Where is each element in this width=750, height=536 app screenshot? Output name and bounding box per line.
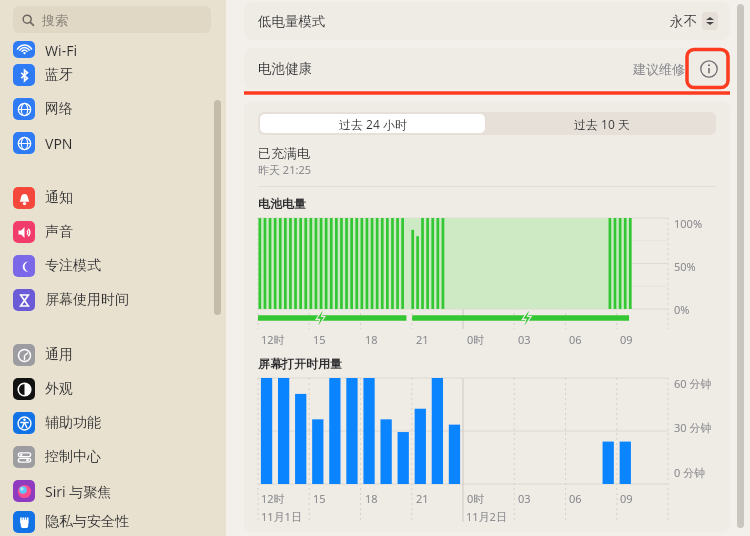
staticText: 外观 (45, 380, 73, 398)
staticText: 12时 (261, 332, 285, 347)
staticText: 隐私与安全性 (45, 513, 129, 531)
button[interactable]: 蓝牙 (13, 58, 213, 92)
button[interactable]: VPN (13, 126, 213, 160)
staticText: 辅助功能 (45, 414, 101, 432)
button[interactable]: 网络 (13, 92, 213, 126)
staticText: 11月2日 (466, 509, 507, 524)
staticText: 12时 (261, 491, 285, 506)
staticText: 21 (416, 332, 429, 347)
staticText: 06 (569, 332, 582, 347)
staticText: Siri 与聚焦 (45, 482, 112, 501)
button[interactable]: 过去 24 小时 (260, 114, 485, 133)
button[interactable]: 控制中心 (13, 440, 213, 474)
button[interactable]: 过去 10 天 (487, 112, 716, 135)
staticText: 建议维修 (633, 61, 685, 77)
staticText: VPN (45, 134, 73, 153)
staticText: 0时 (467, 491, 485, 506)
staticText: 过去 24 小时 (339, 116, 407, 132)
staticText: 03 (518, 491, 531, 506)
button[interactable]: 外观 (13, 372, 213, 406)
staticText: 蓝牙 (45, 66, 73, 84)
staticText: 06 (569, 491, 582, 506)
staticText: 11月1日 (261, 509, 302, 524)
staticText: 30 分钟 (674, 420, 712, 435)
staticText: 声音 (45, 223, 73, 241)
button[interactable]: 通知 (13, 181, 213, 215)
staticText: Wi-Fi (45, 41, 78, 58)
staticText: 0% (674, 302, 690, 317)
button[interactable]: 声音 (13, 215, 213, 249)
button[interactable]: 搜索 (13, 6, 211, 33)
button[interactable]: 辅助功能 (13, 406, 213, 440)
staticText: 专注模式 (45, 257, 101, 275)
staticText: 18 (365, 332, 378, 347)
staticText: 15 (313, 491, 326, 506)
staticText: 60 分钟 (674, 376, 712, 391)
staticText: 已充满电 (258, 145, 310, 161)
staticText: 03 (518, 332, 531, 347)
staticText: 15 (313, 332, 326, 347)
staticText: 18 (365, 491, 378, 506)
staticText: 控制中心 (45, 448, 101, 466)
staticText: 21 (416, 491, 429, 506)
staticText: 通用 (45, 346, 73, 364)
button[interactable]: 屏幕使用时间 (13, 283, 213, 317)
button[interactable]: 电池健康 (244, 48, 730, 89)
staticText: 50% (674, 259, 696, 274)
staticText: 网络 (45, 100, 73, 118)
staticText: 电池健康 (258, 60, 312, 77)
staticText: 0时 (467, 332, 485, 347)
button[interactable]: 电池健康更多信息 (698, 58, 720, 80)
button[interactable]: 通用 (13, 338, 213, 372)
staticText: 低电量模式 (258, 13, 326, 30)
staticText: 通知 (45, 189, 73, 207)
staticText: 永不 (670, 13, 697, 30)
button[interactable]: 专注模式 (13, 249, 213, 283)
button[interactable]: Siri 与聚焦 (13, 474, 213, 508)
staticText: 09 (620, 491, 633, 506)
staticText: 100% (674, 216, 703, 231)
staticText: 搜索 (42, 12, 68, 28)
staticText: 昨天 21:25 (258, 162, 311, 177)
staticText: 屏幕使用时间 (45, 291, 129, 309)
staticText: 屏幕打开时用量 (258, 356, 342, 371)
staticText: 过去 10 天 (574, 116, 630, 132)
button[interactable]: 隐私与安全性 (13, 508, 213, 536)
button[interactable]: Wi-Fi (13, 41, 213, 58)
staticText: 0 分钟 (674, 465, 706, 480)
staticText: 09 (620, 332, 633, 347)
staticText: 电池电量 (258, 196, 306, 211)
button[interactable]: 低电量模式 (244, 2, 730, 40)
